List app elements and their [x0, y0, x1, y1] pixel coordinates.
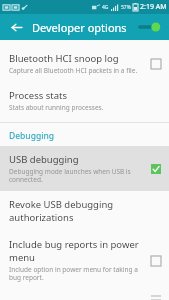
- staticText: 57%: [121, 4, 131, 11]
- staticText: 2:19 AM: [140, 2, 167, 12]
- staticText: Capture all Bluetooth HCI packets in a f…: [9, 66, 138, 75]
- staticText: Include option in power menu for taking …: [9, 265, 143, 282]
- button[interactable]: Bluetooth HCI snoop log: [0, 45, 169, 82]
- staticText: Developer options: [32, 20, 136, 35]
- staticText: Revoke USB debugging authorizations: [9, 198, 156, 224]
- button[interactable]: Include bug reports in power menu: [0, 231, 169, 289]
- staticText: Debugging: [9, 130, 55, 142]
- staticText: Stats about running processes.: [9, 103, 104, 112]
- button[interactable]: Process stats: [0, 82, 169, 119]
- button[interactable]: Back: [7, 18, 25, 36]
- staticText: Debugging mode launches when USB is conn…: [9, 167, 143, 184]
- button[interactable]: USB debugging: [0, 146, 169, 191]
- staticText: Bluetooth HCI snoop log: [9, 52, 119, 65]
- staticText: 4G: [102, 4, 109, 11]
- button[interactable]: Disabled checkbox: [149, 254, 162, 267]
- staticText: USB debugging: [9, 153, 79, 166]
- button[interactable]: Revoke USB debugging authorizations: [0, 191, 169, 231]
- staticText: Process stats: [9, 89, 68, 102]
- staticText: Include bug reports in power menu: [9, 238, 143, 264]
- button[interactable]: Disabled checkbox: [149, 57, 162, 70]
- button[interactable]: Enabled checkbox: [149, 162, 162, 175]
- button[interactable]: Allow mock locations: [0, 289, 169, 300]
- button[interactable]: Toggle developer options: [136, 18, 162, 36]
